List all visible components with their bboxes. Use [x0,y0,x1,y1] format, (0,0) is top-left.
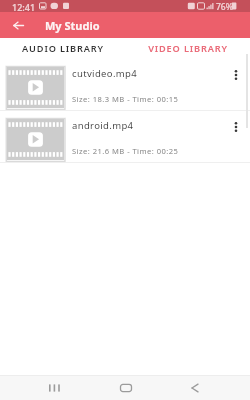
staticText: Size: 21.6 MB - Time: 00:25 [72,146,179,156]
staticText: android.mp4 [72,119,134,132]
staticText: VIDEO LIBRARY [148,42,228,55]
button[interactable]: Home [115,377,137,399]
staticText: My Studio [45,18,100,33]
staticText: cutvideo.mp4 [72,67,137,80]
button[interactable]: Back [7,14,29,36]
button[interactable]: AUDIO LIBRARY [0,38,125,58]
button[interactable]: Recent apps [44,377,66,399]
button[interactable]: More options [226,117,245,136]
staticText: 12:41 [12,1,36,13]
staticText: 76% [216,1,233,13]
button[interactable]: android.mp4 [0,111,250,162]
button[interactable]: Back [184,377,206,399]
staticText: Size: 18.3 MB - Time: 00:15 [72,94,179,104]
button[interactable]: cutvideo.mp4 [0,59,250,110]
button[interactable]: VIDEO LIBRARY [125,38,250,58]
button[interactable]: More options [226,65,245,84]
staticText: AUDIO LIBRARY [22,42,104,55]
